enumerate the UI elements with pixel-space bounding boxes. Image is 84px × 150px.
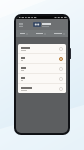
button[interactable]: Filter xyxy=(31,30,51,37)
button[interactable]: Selected option xyxy=(59,57,63,61)
button[interactable]: Option xyxy=(18,64,66,73)
button[interactable]: Option xyxy=(59,77,63,81)
button[interactable]: Option xyxy=(59,67,63,71)
button[interactable]: Option xyxy=(18,84,66,93)
button[interactable]: Option xyxy=(18,74,66,83)
button[interactable]: Option xyxy=(18,44,66,53)
button[interactable]: Filter xyxy=(51,30,68,37)
button[interactable]: Filter xyxy=(16,30,31,37)
button[interactable]: Option xyxy=(59,47,63,51)
button[interactable]: Selected option xyxy=(18,54,66,63)
button[interactable]: Option xyxy=(59,87,63,91)
button[interactable]: Menu xyxy=(18,22,24,28)
